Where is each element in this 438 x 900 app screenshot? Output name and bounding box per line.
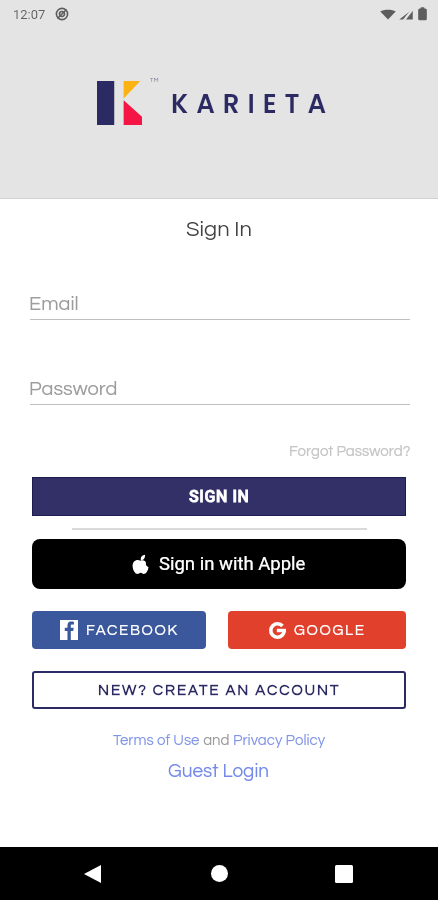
- staticText: Email: [29, 294, 79, 315]
- button[interactable]: FACEBOOK: [32, 611, 206, 649]
- staticText: Password: [29, 379, 118, 400]
- button[interactable]: SIGN IN: [32, 477, 406, 516]
- button[interactable]: Guest Login: [160, 759, 278, 783]
- staticText: NEW? CREATE AN ACCOUNT: [98, 683, 341, 698]
- button[interactable]: Home: [188, 847, 250, 900]
- staticText: and: [200, 733, 233, 748]
- button[interactable]: Sign in with Apple: [32, 539, 406, 589]
- staticText: GOOGLE: [294, 623, 366, 638]
- staticText: Sign In: [186, 218, 252, 241]
- button[interactable]: GOOGLE: [228, 611, 406, 649]
- button[interactable]: Recent apps: [313, 847, 375, 900]
- staticText: SIGN IN: [189, 487, 250, 506]
- staticText: KARIETA: [171, 86, 335, 122]
- staticText: Sign in with Apple: [159, 553, 306, 575]
- button[interactable]: Privacy Policy: [233, 733, 326, 748]
- staticText: 12:07: [13, 7, 46, 22]
- staticText: TM: [150, 77, 159, 83]
- button[interactable]: NEW? CREATE AN ACCOUNT: [32, 671, 406, 709]
- button[interactable]: Back: [61, 847, 123, 900]
- staticText: FACEBOOK: [86, 623, 179, 638]
- button[interactable]: Forgot Password?: [285, 440, 415, 463]
- button[interactable]: Terms of Use: [113, 733, 200, 748]
